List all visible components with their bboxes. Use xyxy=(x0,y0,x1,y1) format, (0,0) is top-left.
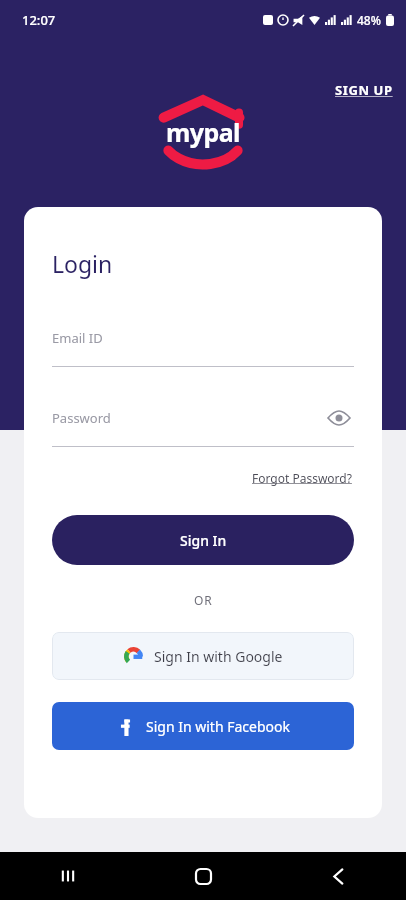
staticText: Login xyxy=(52,248,113,279)
staticText: Sign In with Google xyxy=(154,647,283,666)
staticText: Forgot Password? xyxy=(252,470,352,486)
button[interactable]: Back xyxy=(271,852,406,900)
staticText: Email ID xyxy=(52,329,103,347)
staticText: mypal xyxy=(166,115,240,149)
button[interactable]: Show password xyxy=(324,403,354,433)
staticText: 48% xyxy=(357,12,381,28)
staticText: Sign In with Facebook xyxy=(146,717,290,736)
button[interactable]: Forgot Password? xyxy=(250,468,354,488)
staticText: 12:07 xyxy=(22,11,56,29)
staticText: SIGN UP xyxy=(335,81,393,99)
staticText: Password xyxy=(52,409,111,427)
staticText: Sign In xyxy=(180,531,227,550)
button[interactable]: Recents xyxy=(0,852,136,900)
button[interactable]: Sign In with Google xyxy=(52,632,354,680)
staticText: OR xyxy=(194,592,213,608)
button[interactable]: Sign In xyxy=(52,515,354,565)
button[interactable]: Sign In with Facebook xyxy=(52,702,354,750)
button[interactable]: SIGN UP xyxy=(331,78,397,102)
button[interactable]: Home xyxy=(136,852,271,900)
